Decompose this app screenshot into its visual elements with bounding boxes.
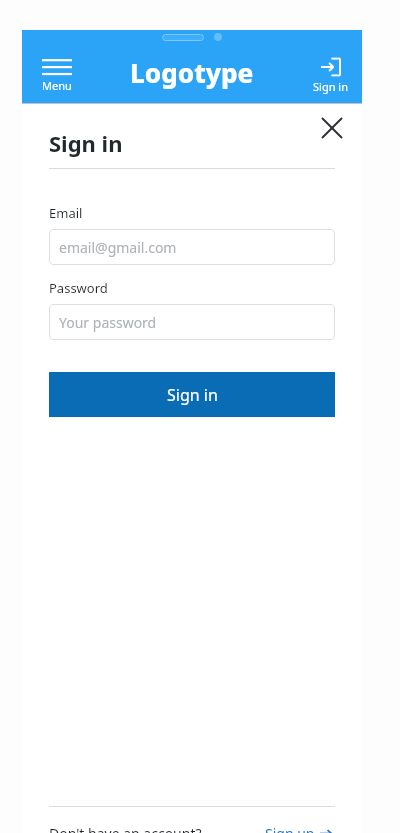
staticText: Sign in [49, 128, 123, 158]
staticText: Your password [59, 313, 157, 332]
button[interactable]: Your password [49, 304, 335, 340]
staticText: Sign in [313, 79, 348, 94]
other: Sign in [321, 57, 341, 77]
staticText: Don't have an account? [49, 824, 202, 833]
staticText: Logotype [130, 55, 254, 90]
staticText: Menu [42, 78, 72, 93]
staticText: Sign in [167, 384, 218, 406]
button[interactable]: Menu [36, 56, 78, 95]
button[interactable]: Sign up [263, 820, 335, 833]
staticText: email@gmail.com [59, 238, 177, 257]
other: Close [322, 118, 342, 138]
staticText: Password [49, 279, 108, 297]
staticText: Sign up [265, 824, 315, 833]
button[interactable]: email@gmail.com [49, 229, 335, 265]
button[interactable]: Sign in [307, 55, 354, 96]
other: Menu [42, 58, 72, 76]
button[interactable]: Sign in [49, 372, 335, 417]
button[interactable]: Close [318, 114, 346, 142]
staticText: Email [49, 204, 83, 222]
